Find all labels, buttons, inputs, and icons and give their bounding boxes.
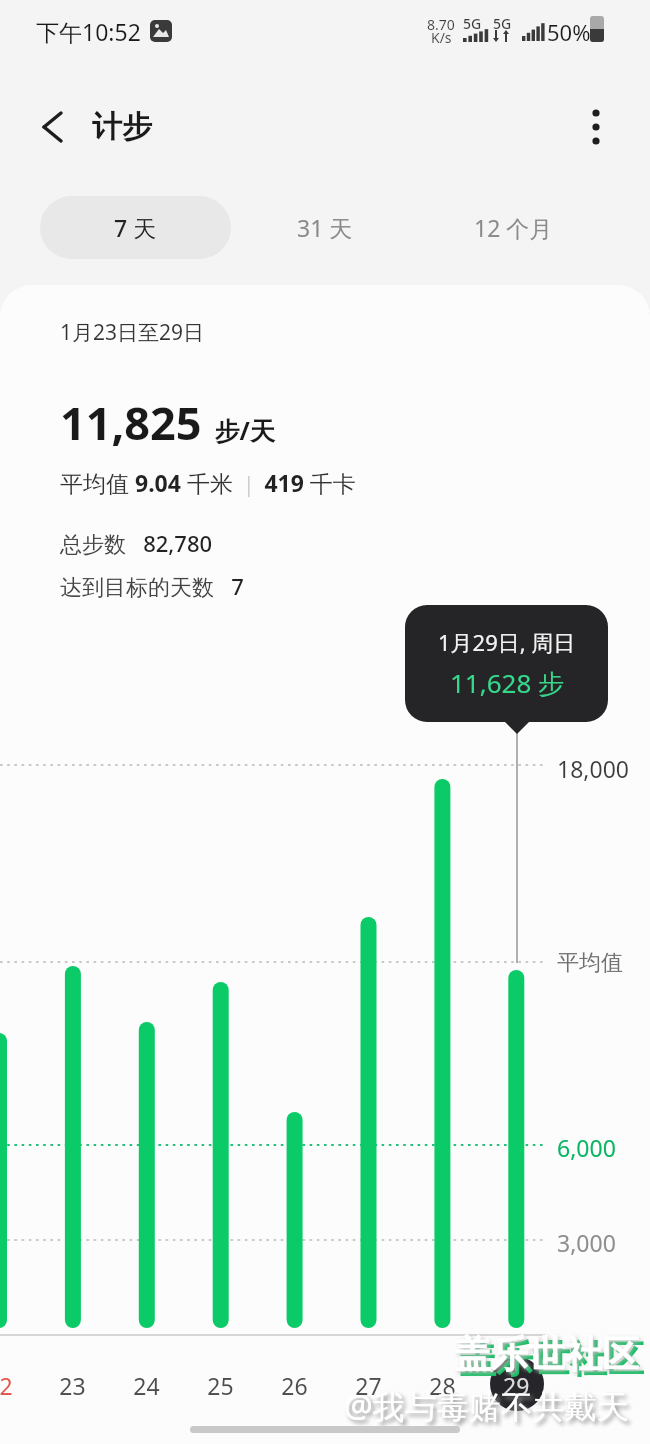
staticText: 3,000 (557, 1227, 616, 1258)
staticText: 8.70 (427, 15, 455, 31)
button[interactable] (40, 112, 64, 142)
staticText: 总步数 82,780 (60, 528, 213, 558)
staticText: 下午10:52 (36, 16, 141, 47)
staticText: 29 (503, 1370, 530, 1401)
staticText: 29 (503, 1370, 530, 1401)
staticText: 22 (0, 1370, 13, 1401)
staticText: 6,000 (557, 1132, 616, 1163)
staticText: 18,000 (557, 753, 629, 784)
staticText: @我与毒赌不共戴天 (344, 1384, 629, 1428)
button[interactable]: 7 天 (40, 196, 231, 259)
staticText: 31 天 (297, 212, 353, 243)
staticText: 盖乐世社区 (454, 1331, 639, 1378)
staticText: 7 天 (114, 212, 157, 243)
staticText: 27 (355, 1370, 382, 1401)
staticText: 26 (281, 1370, 308, 1401)
button[interactable]: 31 天 (270, 196, 380, 259)
staticText: 1月23日至29日 (60, 318, 205, 347)
staticText: 平均值 (557, 949, 623, 977)
staticText: 24 (133, 1370, 160, 1401)
staticText: 28 (429, 1370, 456, 1401)
staticText: 5G (493, 14, 512, 30)
button[interactable]: 12 个月 (448, 196, 578, 259)
staticText: 23 (59, 1370, 86, 1401)
staticText: 11,628 步 (450, 665, 565, 701)
staticText: 达到目标的天数 7 (60, 571, 244, 601)
staticText: K/s (431, 28, 452, 44)
staticText: 平均值 9.04 千米 ｜ 419 千卡 (60, 467, 356, 498)
staticText: 25 (207, 1370, 234, 1401)
staticText: 盖乐世社区 (459, 1336, 644, 1383)
staticText: 1月29日, 周日 (438, 627, 576, 657)
button[interactable] (588, 108, 604, 148)
staticText: 11,825 步/天 (60, 392, 275, 453)
staticText: 12 个月 (474, 212, 553, 243)
staticText: 50% (547, 17, 591, 47)
staticText: 计步 (92, 108, 152, 146)
staticText: 5G (463, 14, 482, 30)
